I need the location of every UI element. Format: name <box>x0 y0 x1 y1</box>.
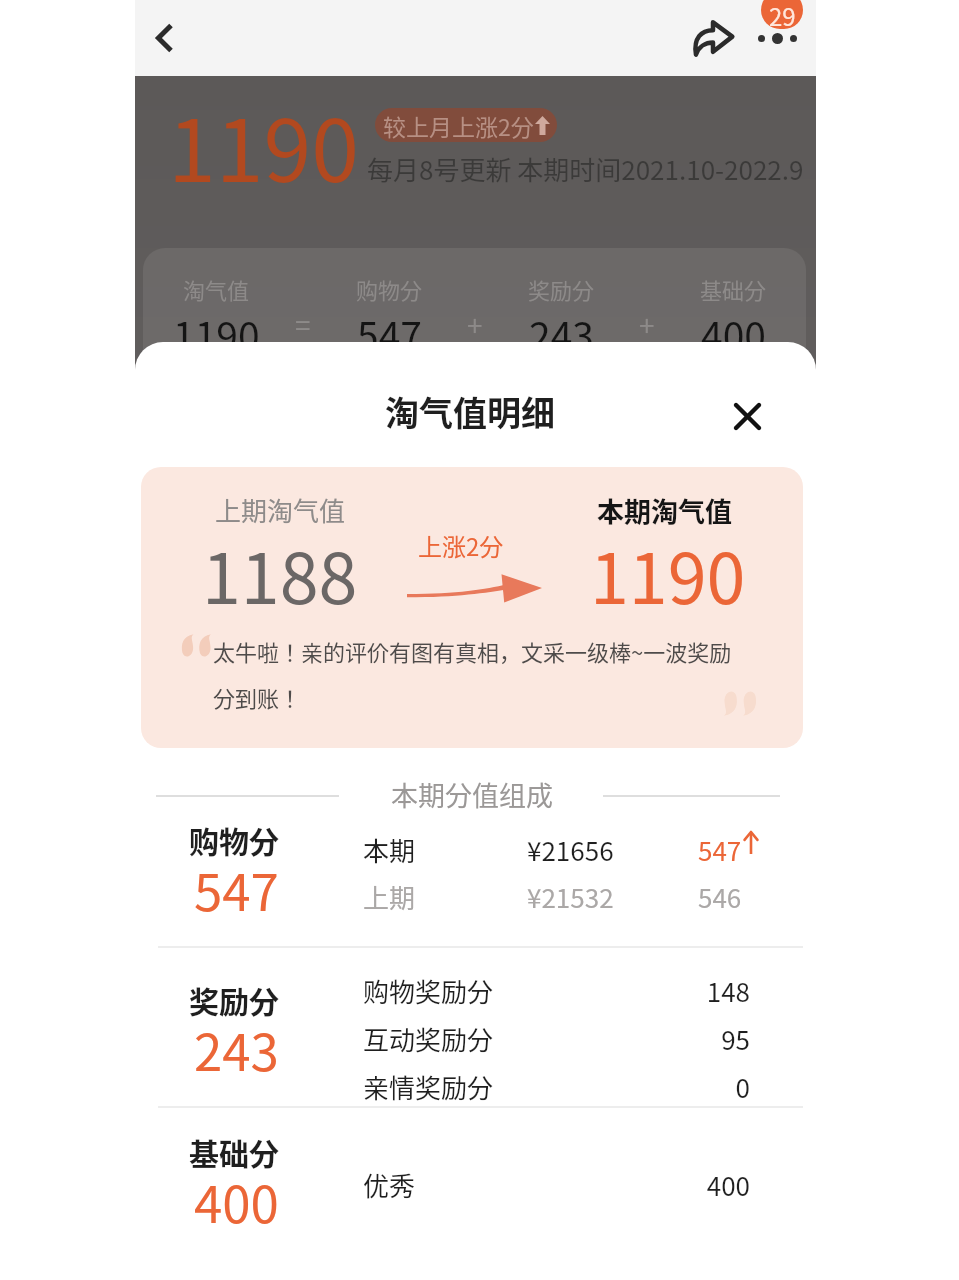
staticText: 1190 <box>173 306 260 362</box>
staticText: 淘气值明细 <box>385 387 555 436</box>
staticText: 奖励分 <box>528 273 595 305</box>
staticText: = <box>295 304 311 345</box>
staticText: 1190 <box>168 82 359 207</box>
staticText: + <box>639 304 655 345</box>
staticText: 400 <box>701 306 766 362</box>
staticText: 400 <box>135 1166 750 1204</box>
staticText: 547 <box>194 852 279 926</box>
staticText: 本期淘气值 <box>597 491 732 530</box>
staticText: 优秀 <box>363 1166 416 1204</box>
staticText: 本期 <box>363 831 416 869</box>
staticText: 淘气值 <box>183 273 250 305</box>
staticText: + <box>467 304 483 345</box>
staticText: 29 <box>769 0 796 29</box>
staticText: 546 <box>698 878 742 916</box>
staticText: 基础分 <box>189 1130 279 1173</box>
staticText: 奖励分 <box>189 978 279 1021</box>
staticText: 太牛啦！亲的评价有图有真相，文采一级棒~一波奖励 分到账！ <box>213 635 743 713</box>
staticText: 243 <box>529 306 594 362</box>
staticText: 400 <box>194 1164 279 1238</box>
staticText: 148 <box>135 972 750 1010</box>
staticText: 基础分 <box>700 273 767 305</box>
staticText: 互动奖励分 <box>363 1020 494 1058</box>
staticText: 上涨2分 <box>418 528 504 563</box>
staticText: 上期淘气值 <box>215 491 346 529</box>
staticText: 亲情奖励分 <box>363 1068 494 1106</box>
button[interactable]: Share <box>685 10 741 66</box>
staticText: 每月8号更新 本期时间2021.10-2022.9 <box>367 150 804 188</box>
staticText: 547 <box>357 306 422 362</box>
staticText: 1188 <box>202 523 358 624</box>
staticText: ¥21532 <box>527 878 614 916</box>
staticText: 1190 <box>590 523 746 624</box>
staticText: 本期分值组成 <box>391 775 553 814</box>
staticText: 547 <box>698 831 742 869</box>
staticText: 0 <box>135 1068 750 1106</box>
staticText: 购物分 <box>356 273 423 305</box>
staticText: 购物奖励分 <box>363 972 494 1010</box>
button[interactable]: Back <box>137 10 193 66</box>
button[interactable]: Close detail sheet <box>135 76 816 1280</box>
staticText: ¥21656 <box>527 831 614 869</box>
staticText: 上期 <box>363 878 416 916</box>
button[interactable]: Close <box>723 392 771 440</box>
staticText: 243 <box>194 1012 279 1086</box>
staticText: 较上月上涨2分 <box>383 109 534 142</box>
button[interactable]: More options <box>734 14 820 62</box>
staticText: 95 <box>135 1020 750 1058</box>
staticText: 购物分 <box>189 818 279 861</box>
